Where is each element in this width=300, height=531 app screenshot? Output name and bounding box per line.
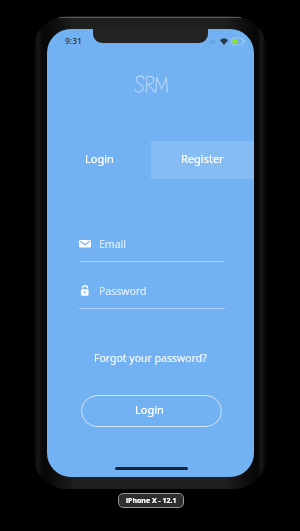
button[interactable]: Login [81,395,222,427]
other: Password [79,285,92,297]
button[interactable]: Register [151,141,254,179]
staticText: Login [85,151,114,166]
other: SRM logo [135,75,171,95]
staticText: iPhone X - 12.1 [126,496,177,506]
button[interactable]: Login [47,141,151,179]
staticText: Register [181,151,224,166]
staticText: 9:31 [65,35,82,47]
staticText: Login [135,402,164,417]
staticText: Email [99,237,126,251]
other: Battery [231,38,245,45]
button[interactable]: iPhone X - 12.1 [118,493,184,508]
staticText: Password [99,284,147,298]
other: Email [79,238,92,250]
button[interactable]: Forgot your password? [94,351,207,365]
